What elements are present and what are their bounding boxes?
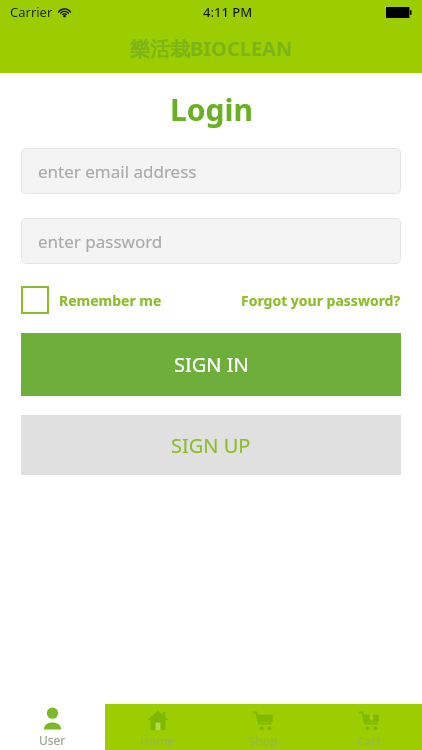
button[interactable]: enter password (21, 218, 401, 264)
staticText: Forgot your password? (241, 291, 401, 310)
staticText: SIGN IN (174, 351, 249, 378)
button[interactable]: Shop (210, 702, 316, 750)
other: User (41, 707, 64, 730)
button[interactable]: Forgot your password? (241, 291, 401, 310)
staticText: enter password (38, 230, 163, 253)
other: Cart (358, 709, 380, 731)
button[interactable]: Home (105, 702, 210, 750)
button[interactable]: enter email address (21, 148, 401, 194)
other: Shop (252, 709, 274, 731)
staticText: Cart (357, 733, 381, 749)
button[interactable]: User (0, 702, 105, 750)
staticText: 樂活栽BIOCLEAN (130, 35, 293, 62)
button[interactable]: SIGN UP (21, 415, 401, 475)
staticText: Shop (249, 733, 278, 749)
staticText: Home (140, 733, 175, 749)
staticText: SIGN UP (171, 432, 251, 459)
staticText: Carrier (10, 3, 53, 21)
button[interactable]: Remember me (21, 286, 166, 314)
staticText: Remember me (59, 291, 162, 310)
staticText: User (39, 732, 66, 748)
other: Home (147, 709, 169, 731)
button[interactable]: SIGN IN (21, 333, 401, 396)
staticText: Login (170, 89, 253, 130)
staticText: enter email address (38, 160, 197, 183)
staticText: 4:11 PM (203, 3, 253, 21)
button[interactable]: Cart (316, 702, 422, 750)
